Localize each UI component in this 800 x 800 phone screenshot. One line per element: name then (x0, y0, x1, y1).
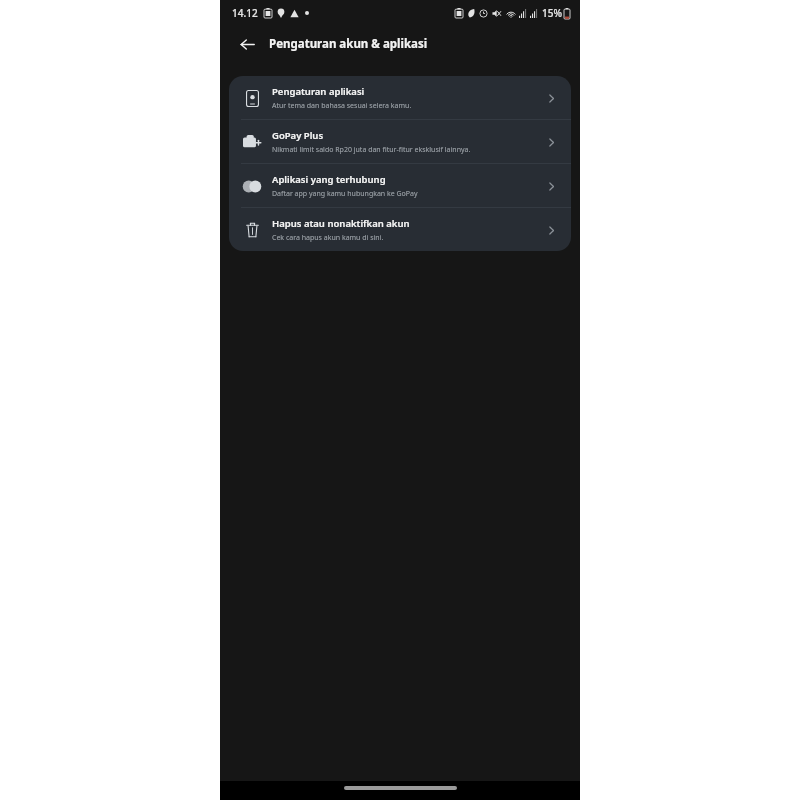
staticText: Pengaturan akun & aplikasi (269, 36, 428, 52)
staticText: 15% (542, 6, 562, 20)
staticText: GoPay Plus (272, 129, 324, 142)
staticText: Daftar app yang kamu hubungkan ke GoPay (272, 189, 418, 199)
other: Pengaturan aplikasi (541, 88, 561, 108)
staticText: Aplikasi yang terhubung (272, 173, 386, 186)
staticText: Nikmati limit saldo Rp20 juta dan fitur-… (272, 145, 471, 155)
staticText: Atur tema dan bahasa sesuai selera kamu. (272, 101, 412, 111)
button[interactable]: Back (234, 31, 260, 57)
staticText: Pengaturan aplikasi (272, 85, 365, 98)
button[interactable]: Pengaturan aplikasi (229, 76, 571, 119)
staticText: Hapus atau nonaktifkan akun (272, 217, 410, 230)
other: Hapus atau nonaktifkan akun (541, 220, 561, 240)
staticText: Cek cara hapus akun kamu di sini. (272, 233, 384, 243)
other: GoPay Plus (541, 132, 561, 152)
other: Aplikasi yang terhubung (541, 176, 561, 196)
button[interactable]: Hapus atau nonaktifkan akun (229, 208, 571, 251)
button[interactable]: GoPay Plus (229, 120, 571, 163)
button[interactable]: Aplikasi yang terhubung (229, 164, 571, 207)
staticText: 14.12 (232, 6, 258, 20)
